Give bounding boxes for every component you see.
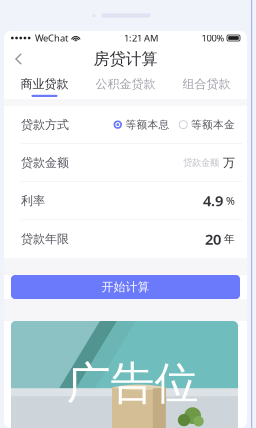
- staticText: 开始计算: [101, 280, 149, 294]
- staticText: 贷款金额: [21, 155, 69, 170]
- button[interactable]: 公积金贷款: [85, 73, 166, 99]
- button[interactable]: 贷款方式: [4, 106, 247, 144]
- staticText: 利率: [21, 193, 45, 208]
- staticText: WeChat: [35, 32, 68, 44]
- staticText: 组合贷款: [182, 76, 230, 91]
- staticText: 贷款金额: [183, 157, 219, 168]
- staticText: 等额本息: [125, 118, 169, 131]
- button[interactable]: 开始计算: [11, 275, 240, 299]
- staticText: 4.9: [203, 191, 223, 210]
- button[interactable]: 组合贷款: [166, 73, 247, 99]
- staticText: 广告位: [67, 356, 199, 410]
- staticText: 贷款年限: [21, 232, 69, 246]
- staticText: 万: [223, 155, 235, 170]
- staticText: 1:21 AM: [124, 32, 158, 44]
- staticText: 年: [224, 232, 235, 245]
- staticText: 商业贷款: [20, 76, 68, 91]
- button[interactable]: Back: [9, 46, 28, 72]
- staticText: %: [226, 194, 235, 208]
- staticText: 公积金贷款: [95, 76, 155, 91]
- staticText: 20: [205, 229, 221, 249]
- staticText: 等额本金: [191, 118, 235, 131]
- button[interactable]: 贷款金额: [4, 144, 247, 182]
- button[interactable]: 商业贷款: [4, 73, 85, 99]
- staticText: 贷款方式: [21, 117, 69, 132]
- staticText: 房贷计算: [93, 49, 157, 69]
- button[interactable]: 贷款年限: [4, 220, 247, 258]
- button[interactable]: 利率: [4, 182, 247, 220]
- staticText: 100%: [201, 32, 224, 44]
